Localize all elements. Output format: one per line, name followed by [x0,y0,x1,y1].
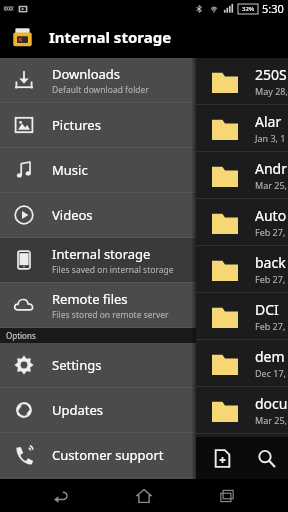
button[interactable]: demo [0,340,288,387]
button[interactable]: Back [39,479,83,512]
staticText: 5:30 [262,1,284,16]
button[interactable]: Settings [0,343,196,388]
staticText: Files stored on remote server [52,309,169,321]
staticText: Feb 27, [255,273,286,285]
button[interactable]: Andro [0,152,288,199]
staticText: Auto [255,206,287,225]
button[interactable]: Videos [0,193,196,238]
staticText: Internal storage [52,245,151,263]
staticText: Videos [52,206,93,224]
staticText: Mar 25, [255,179,287,191]
staticText: Andro [255,159,288,178]
button[interactable]: Customer support [0,433,196,478]
button[interactable]: New file [200,437,244,479]
staticText: DCIM [255,300,288,319]
button[interactable]: DCIM [0,293,288,340]
button[interactable]: Recents [205,479,249,512]
button[interactable]: Pictures [0,103,196,148]
staticText: May 28, [255,85,288,97]
button[interactable]: docum [0,387,288,434]
button[interactable]: Music [0,148,196,193]
staticText: Updates [52,401,104,419]
staticText: Jan 3, 1 [255,132,286,144]
staticText: Internal storage [49,27,172,47]
staticText: Alarm [255,112,288,131]
button[interactable]: Internal storage [0,238,196,283]
staticText: Remote files [52,290,128,308]
staticText: 250S [255,65,287,84]
staticText: backu [255,253,288,272]
staticText: Files saved on internal storage [52,264,174,276]
button[interactable]: Alarm [0,105,288,152]
button[interactable]: Updates [0,388,196,433]
button[interactable]: Downloads [0,58,196,103]
staticText: Settings [52,356,102,374]
staticText: Downloads [52,65,121,83]
staticText: Customer support [52,446,164,464]
button[interactable]: Home [122,479,166,512]
staticText: Pictures [52,116,101,134]
staticText: Music [52,161,88,179]
button[interactable]: Remote files [0,283,196,328]
button[interactable]: App icon [11,26,34,49]
button[interactable]: backu [0,246,288,293]
button[interactable]: 250S [0,58,288,105]
button[interactable]: Auto [0,199,288,246]
staticText: Options [6,330,36,341]
staticText: Default download folder [52,84,149,96]
staticText: Mar 25, [255,414,287,426]
staticText: Feb 27, [255,226,286,238]
staticText: Feb 27, [255,320,286,332]
staticText: Dec 17, [255,367,287,379]
staticText: 32% [242,5,255,13]
button[interactable]: Search [244,437,288,479]
staticText: docum [255,394,288,413]
staticText: demo [255,347,288,366]
